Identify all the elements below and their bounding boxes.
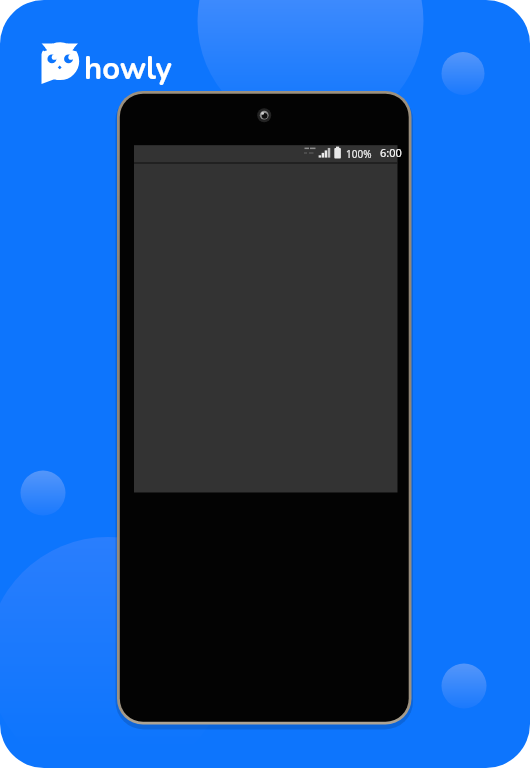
button[interactable]: howly <box>41 41 167 84</box>
staticText: howly <box>84 48 172 90</box>
staticText: 6:00 <box>380 145 402 160</box>
staticText: 100% <box>346 147 372 161</box>
